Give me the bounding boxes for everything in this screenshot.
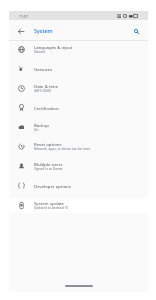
button[interactable]: Backup — [9, 118, 148, 138]
staticText: Updated to Android 10 — [34, 206, 69, 210]
staticText: Signed in as Owner — [34, 167, 63, 171]
staticText: GMT+00:00 — [34, 89, 51, 93]
button[interactable]: Multiple users — [9, 157, 148, 177]
staticText: On — [34, 128, 39, 132]
staticText: Certification — [34, 105, 59, 111]
staticText: Developer options — [34, 183, 71, 189]
staticText: Date & time — [34, 83, 59, 89]
button[interactable]: Certification — [9, 98, 148, 118]
button[interactable]: Back — [15, 25, 27, 37]
button[interactable]: Reset options — [9, 137, 148, 157]
staticText: Languages & input — [34, 44, 73, 50]
staticText: Network, apps, or device can be reset — [34, 147, 91, 151]
staticText: Gboard — [34, 50, 46, 54]
staticText: Reset options — [34, 141, 62, 147]
staticText: Backup — [34, 122, 49, 128]
button[interactable]: Languages & input — [9, 40, 148, 60]
button[interactable]: Developer options — [9, 176, 148, 196]
staticText: System update — [34, 200, 65, 206]
staticText: 11:57 — [19, 14, 28, 19]
staticText: Multiple users — [34, 161, 63, 167]
button[interactable]: Search — [130, 25, 142, 37]
button[interactable]: System update — [9, 196, 148, 216]
button[interactable]: Date & time — [9, 79, 148, 99]
button[interactable]: Gestures — [9, 59, 148, 79]
staticText: Gestures — [34, 66, 52, 72]
staticText: System — [34, 27, 53, 34]
